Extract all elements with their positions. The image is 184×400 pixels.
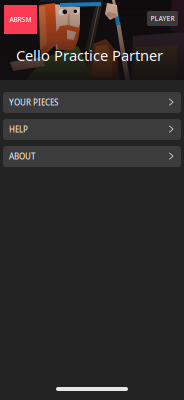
staticText: PLAYER — [150, 14, 174, 23]
staticText: ABOUT — [9, 151, 35, 162]
button[interactable]: PLAYER — [147, 11, 178, 26]
button[interactable]: ABRSM — [4, 5, 37, 34]
staticText: Cello Practice Partner — [16, 45, 163, 65]
button[interactable]: YOUR PIECES — [3, 92, 181, 113]
button[interactable]: ABOUT — [3, 146, 181, 167]
staticText: ABRSM — [9, 15, 31, 24]
button[interactable]: HELP — [3, 119, 181, 140]
staticText: HELP — [9, 124, 28, 135]
staticText: YOUR PIECES — [9, 97, 58, 108]
